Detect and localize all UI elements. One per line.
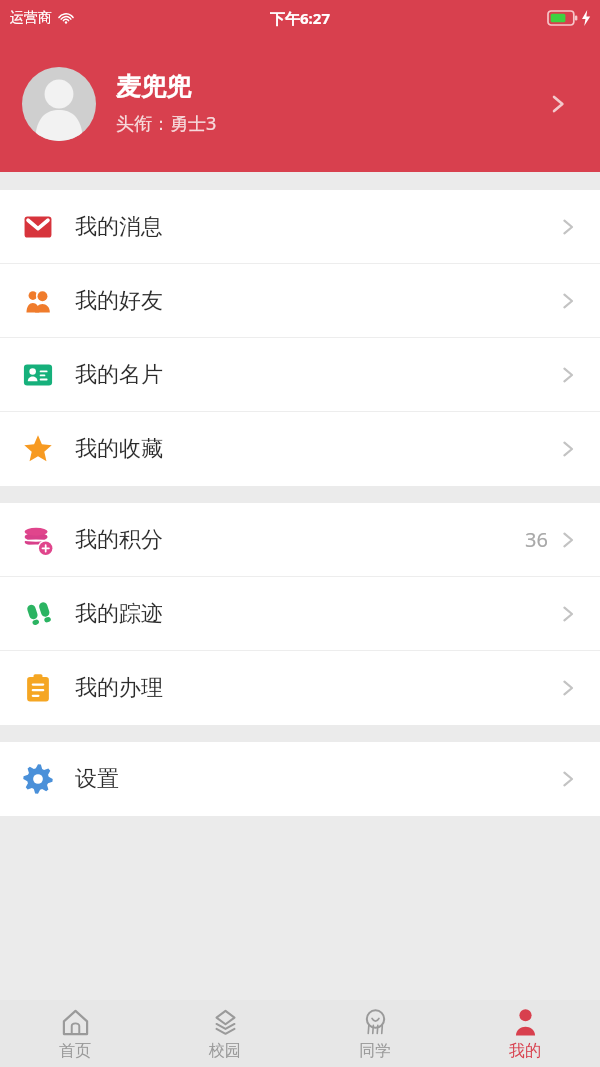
button[interactable]: 我的名片 — [0, 338, 600, 412]
button[interactable]: 设置 — [0, 742, 600, 816]
staticText: 我的消息 — [75, 213, 558, 241]
staticText: 我的 — [509, 1041, 541, 1061]
button[interactable]: 同学 — [300, 1000, 450, 1067]
button[interactable]: 我的积分 — [0, 503, 600, 577]
button[interactable]: 我的办理 — [0, 651, 600, 725]
button[interactable]: 我的好友 — [0, 264, 600, 338]
button[interactable]: 麦兜兜 — [0, 35, 600, 172]
staticText: 我的名片 — [75, 361, 558, 389]
button[interactable]: 首页 — [0, 1000, 150, 1067]
button[interactable]: 我的踪迹 — [0, 577, 600, 651]
staticText: 同学 — [359, 1041, 391, 1061]
button[interactable]: 我的 — [450, 1000, 600, 1067]
button[interactable]: 我的消息 — [0, 190, 600, 264]
staticText: 我的办理 — [75, 674, 558, 702]
staticText: 设置 — [75, 765, 558, 793]
staticText: 下午6:27 — [270, 8, 330, 28]
button[interactable]: 校园 — [150, 1000, 300, 1067]
staticText: 我的踪迹 — [75, 600, 558, 628]
staticText: 首页 — [59, 1041, 91, 1061]
staticText: 我的收藏 — [75, 435, 558, 463]
staticText: 运营商 — [10, 9, 52, 27]
staticText: 我的积分 — [75, 526, 525, 554]
staticText: 麦兜兜 — [116, 71, 191, 102]
staticText: 36 — [525, 526, 548, 553]
staticText: 头衔：勇士3 — [116, 111, 217, 136]
staticText: 校园 — [209, 1041, 241, 1061]
button[interactable]: 我的收藏 — [0, 412, 600, 486]
other: 查看个人资料 — [538, 84, 578, 124]
staticText: 我的好友 — [75, 287, 558, 315]
